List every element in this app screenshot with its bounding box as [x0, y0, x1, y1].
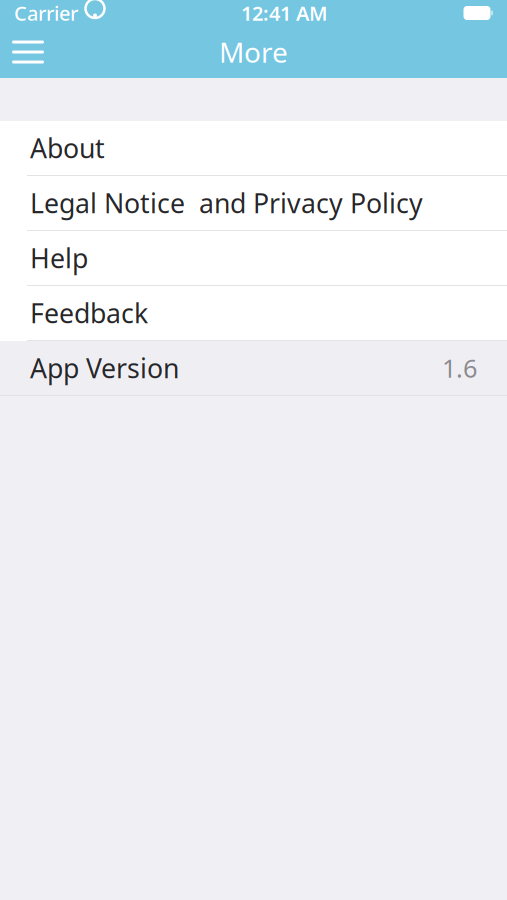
button[interactable]: App Version: [0, 341, 507, 395]
button[interactable]: Feedback: [0, 286, 507, 340]
staticText: Carrier: [14, 0, 78, 26]
staticText: Help: [30, 240, 88, 276]
staticText: 1.6: [442, 351, 477, 385]
button[interactable]: Legal Notice and Privacy Policy: [0, 176, 507, 230]
staticText: Legal Notice and Privacy Policy: [30, 185, 423, 221]
button[interactable]: About: [0, 121, 507, 175]
staticText: 12:41 AM: [241, 0, 328, 26]
staticText: App Version: [30, 350, 179, 386]
button[interactable]: Menu: [0, 26, 56, 78]
staticText: Feedback: [30, 295, 148, 331]
button[interactable]: Help: [0, 231, 507, 285]
staticText: More: [219, 33, 288, 71]
staticText: About: [30, 130, 105, 166]
